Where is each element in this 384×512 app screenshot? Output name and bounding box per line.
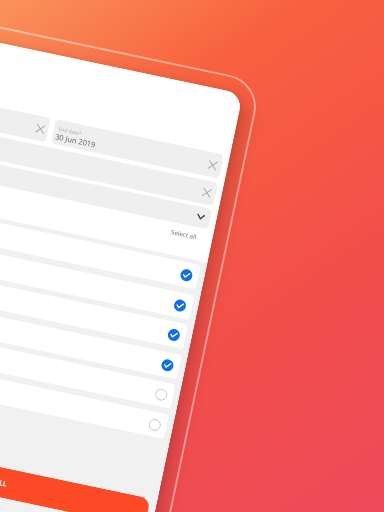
button[interactable]: Expand xyxy=(190,206,211,228)
button[interactable] xyxy=(0,178,201,289)
button[interactable] xyxy=(0,238,188,349)
staticText: End date* xyxy=(58,126,82,137)
staticText: Select all xyxy=(170,227,197,241)
button[interactable]: Clear xyxy=(196,182,217,203)
staticText: DOWNLOAD ALL xyxy=(0,469,7,488)
button[interactable]: Select all xyxy=(161,224,208,250)
button[interactable] xyxy=(0,104,218,206)
button[interactable] xyxy=(0,298,176,409)
button[interactable] xyxy=(0,328,169,439)
button[interactable]: Clear end date xyxy=(202,155,223,176)
button[interactable] xyxy=(0,209,194,320)
staticText: 30 Jun 2019 xyxy=(54,131,96,149)
button[interactable] xyxy=(0,130,213,230)
button[interactable]: Clear start date xyxy=(30,118,51,140)
button[interactable] xyxy=(51,119,224,179)
button[interactable] xyxy=(0,75,51,142)
button[interactable]: DOWNLOAD ALL xyxy=(0,428,151,512)
button[interactable] xyxy=(0,268,182,379)
